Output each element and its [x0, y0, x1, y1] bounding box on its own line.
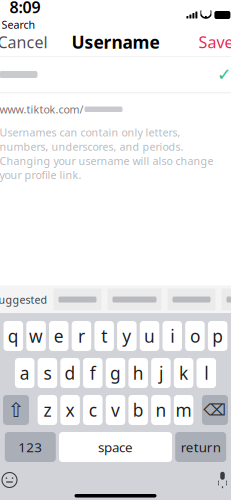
staticText: n — [155, 398, 166, 421]
button[interactable]: y — [117, 321, 137, 351]
staticText: e — [54, 324, 64, 347]
staticText: Username — [71, 30, 159, 53]
staticText: o — [190, 324, 200, 347]
button[interactable]: p — [208, 321, 227, 351]
button[interactable]: Shift — [3, 395, 29, 425]
button[interactable]: c — [83, 395, 102, 425]
button[interactable]: x — [60, 395, 80, 425]
button[interactable]: o — [185, 321, 205, 351]
staticText: v — [111, 398, 120, 421]
button[interactable]: i — [162, 321, 182, 351]
staticText: t — [101, 324, 107, 347]
staticText: d — [65, 361, 76, 384]
staticText: ✓ — [217, 65, 231, 84]
button[interactable]: f — [83, 358, 102, 388]
staticText: www.tiktok.com/ — [0, 102, 83, 116]
staticText: Suggested — [0, 292, 47, 307]
button[interactable]: space — [59, 432, 172, 462]
button[interactable]: Delete — [202, 395, 228, 425]
button[interactable]: b — [128, 395, 148, 425]
button[interactable]: j — [151, 358, 171, 388]
button[interactable]: w — [26, 321, 46, 351]
button[interactable]: Cancel — [0, 23, 59, 61]
button[interactable]: l — [196, 358, 216, 388]
staticText: a — [20, 361, 30, 384]
button[interactable]: return — [175, 432, 226, 462]
staticText: p — [212, 324, 223, 347]
button[interactable]: e — [49, 321, 68, 351]
staticText: 8:09 — [9, 0, 40, 17]
button[interactable]: Dictation — [209, 466, 231, 494]
button[interactable]: g — [106, 358, 125, 388]
button[interactable]: z — [38, 395, 57, 425]
button[interactable]: s — [38, 358, 57, 388]
staticText: Usernames can contain only letters, numb… — [0, 125, 213, 182]
staticText: 123 — [18, 438, 42, 456]
staticText: m — [176, 398, 192, 421]
staticText: g — [110, 361, 121, 384]
button[interactable]: v — [106, 395, 125, 425]
button[interactable]: t — [94, 321, 114, 351]
staticText: Search — [1, 17, 35, 32]
staticText: Save — [198, 31, 231, 53]
staticText: ⇧ — [7, 399, 24, 421]
staticText: z — [43, 398, 51, 421]
button[interactable]: m — [174, 395, 193, 425]
button[interactable]: k — [174, 358, 193, 388]
staticText: i — [170, 324, 174, 347]
staticText: k — [179, 361, 188, 384]
staticText: return — [181, 438, 221, 456]
staticText: Cancel — [0, 31, 47, 53]
staticText: l — [204, 361, 208, 384]
button[interactable]: Emoji keyboard — [0, 466, 23, 494]
button[interactable]: 123 — [5, 432, 56, 462]
button[interactable]: q — [4, 321, 23, 351]
staticText: x — [66, 398, 75, 421]
button[interactable]: r — [72, 321, 91, 351]
button[interactable]: d — [60, 358, 80, 388]
staticText: c — [89, 398, 97, 421]
staticText: r — [78, 324, 85, 347]
button[interactable]: u — [140, 321, 159, 351]
staticText: s — [43, 361, 51, 384]
staticText: y — [122, 324, 131, 347]
staticText: f — [90, 361, 96, 384]
staticText: j — [159, 361, 163, 384]
button[interactable]: a — [15, 358, 34, 388]
staticText: ⌫ — [203, 401, 226, 419]
staticText: q — [8, 324, 19, 347]
button[interactable]: h — [128, 358, 148, 388]
staticText: u — [144, 324, 155, 347]
staticText: space — [98, 438, 133, 456]
staticText: h — [133, 361, 144, 384]
staticText: b — [133, 398, 144, 421]
button[interactable]: n — [151, 395, 171, 425]
button[interactable]: Save — [186, 23, 231, 61]
staticText: w — [29, 324, 43, 347]
